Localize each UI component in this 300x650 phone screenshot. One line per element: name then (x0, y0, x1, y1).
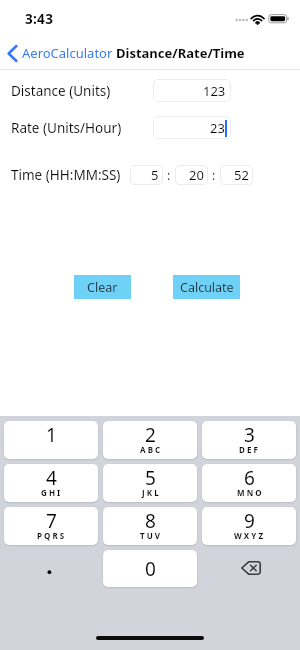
button[interactable]: 9 (202, 507, 296, 545)
button[interactable]: AeroCalculator (6, 44, 113, 62)
staticText: Clear (87, 279, 118, 296)
staticText: : (212, 167, 216, 183)
button[interactable]: 52 (220, 165, 253, 185)
staticText: AeroCalculator (22, 44, 113, 62)
button[interactable]: 5 (130, 165, 163, 185)
staticText: 52 (234, 166, 249, 184)
staticText: Distance (Units) (11, 82, 111, 100)
staticText: TUV (140, 530, 163, 541)
staticText: 0 (145, 556, 156, 582)
staticText: 5 (145, 465, 156, 491)
button[interactable]: 23 (153, 116, 231, 139)
staticText: DEF (239, 444, 261, 455)
button[interactable]: Calculate (173, 275, 240, 299)
staticText: Rate (Units/Hour) (11, 119, 122, 137)
staticText: 20 (189, 166, 204, 184)
button[interactable]: Delete (202, 550, 296, 587)
staticText: 2 (145, 422, 156, 448)
staticText: ABC (140, 444, 163, 455)
staticText: 6 (244, 465, 255, 491)
staticText: 3 (244, 422, 255, 448)
staticText: 3:43 (25, 10, 54, 28)
button[interactable]: Clear (74, 275, 131, 299)
staticText: MNO (237, 487, 264, 498)
button[interactable]: 4 (4, 464, 98, 502)
button[interactable]: 3 (202, 421, 296, 459)
staticText: GHI (41, 487, 63, 498)
staticText: 5 (151, 166, 159, 184)
staticText: 23 (210, 119, 225, 137)
staticText: WXYZ (234, 530, 266, 541)
button[interactable]: 2 (103, 421, 197, 459)
staticText: JKL (142, 487, 161, 498)
staticText: 7 (46, 508, 57, 534)
button[interactable]: 8 (103, 507, 197, 545)
button[interactable]: 5 (103, 464, 197, 502)
staticText: 9 (244, 508, 255, 534)
button[interactable]: 20 (175, 165, 208, 185)
staticText: Time (HH:MM:SS) (11, 166, 121, 184)
staticText: 123 (203, 82, 226, 100)
staticText: Calculate (180, 279, 234, 296)
button[interactable]: 6 (202, 464, 296, 502)
staticText: 4 (46, 465, 57, 491)
button[interactable]: 1 (4, 421, 98, 459)
staticText: Distance/Rate/Time (116, 44, 245, 62)
staticText: : (167, 167, 171, 183)
staticText: 1 (46, 422, 57, 448)
button[interactable]: Decimal point (4, 550, 98, 587)
button[interactable]: 0 (103, 550, 197, 587)
button[interactable]: 7 (4, 507, 98, 545)
staticText: PQRS (37, 530, 67, 541)
staticText: 8 (145, 508, 156, 534)
button[interactable]: 123 (153, 79, 231, 102)
